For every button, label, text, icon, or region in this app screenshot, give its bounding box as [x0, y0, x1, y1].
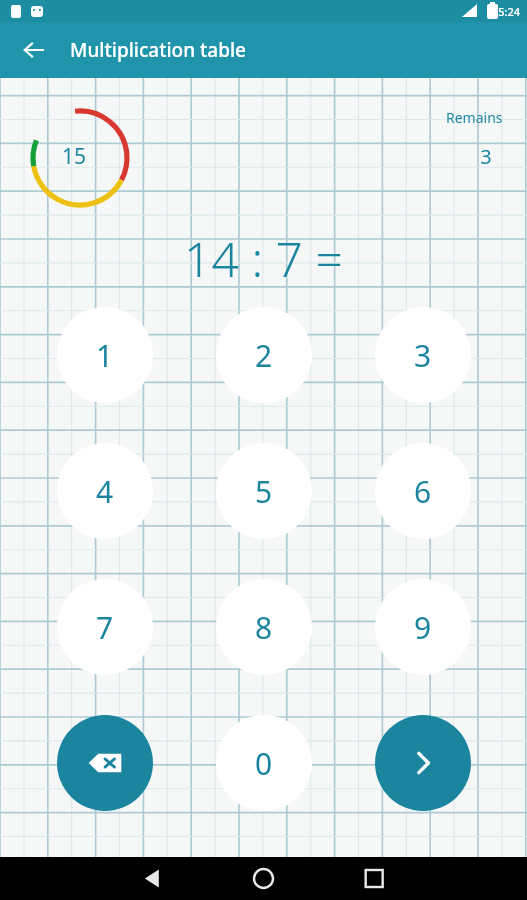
- staticText: 3: [414, 335, 432, 376]
- button[interactable]: Back: [12, 28, 56, 72]
- button[interactable]: 3: [375, 307, 471, 403]
- button[interactable]: 2: [216, 307, 312, 403]
- staticText: 3: [469, 143, 503, 170]
- staticText: Remains: [446, 108, 503, 127]
- button[interactable]: 5: [216, 443, 312, 539]
- staticText: 1: [96, 335, 114, 376]
- button[interactable]: 1: [57, 307, 153, 403]
- staticText: 7: [96, 607, 114, 648]
- button[interactable]: 4: [57, 443, 153, 539]
- staticText: 4: [96, 471, 114, 512]
- staticText: 0: [255, 743, 273, 784]
- button[interactable]: 9: [375, 579, 471, 675]
- staticText: 2: [255, 335, 273, 376]
- staticText: Multiplication table: [70, 37, 246, 63]
- staticText: 15: [62, 142, 87, 171]
- button[interactable]: Next: [375, 715, 471, 811]
- staticText: 6: [414, 471, 432, 512]
- button[interactable]: 6: [375, 443, 471, 539]
- staticText: 9: [414, 607, 432, 648]
- button[interactable]: 0: [216, 715, 312, 811]
- staticText: 15:24: [492, 4, 521, 19]
- staticText: 14 : 7 =: [0, 226, 527, 291]
- button[interactable]: Backspace: [57, 715, 153, 811]
- staticText: 5: [255, 471, 273, 512]
- button[interactable]: 7: [57, 579, 153, 675]
- button[interactable]: 8: [216, 579, 312, 675]
- staticText: 8: [255, 607, 273, 648]
